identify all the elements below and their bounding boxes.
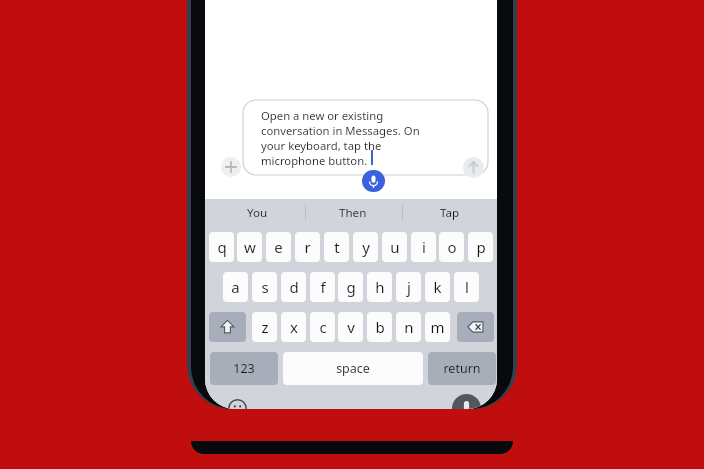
button[interactable]: g: [338, 272, 363, 302]
staticText: Open a new or existing conversation in M…: [261, 108, 420, 168]
button[interactable]: Shift: [209, 312, 246, 342]
button[interactable]: o: [439, 232, 464, 262]
button[interactable]: return: [428, 352, 496, 385]
staticText: y: [362, 237, 370, 257]
staticText: 123: [233, 360, 255, 377]
staticText: w: [244, 237, 256, 257]
button[interactable]: n: [396, 312, 421, 342]
staticText: l: [465, 277, 469, 297]
button[interactable]: m: [425, 312, 450, 342]
staticText: Tap: [440, 205, 460, 221]
staticText: v: [347, 317, 355, 337]
staticText: u: [390, 237, 400, 257]
staticText: q: [217, 237, 227, 257]
button[interactable]: t: [324, 232, 349, 262]
staticText: return: [443, 360, 481, 377]
button[interactable]: You: [213, 200, 301, 225]
button[interactable]: p: [468, 232, 493, 262]
button[interactable]: r: [295, 232, 320, 262]
button[interactable]: [243, 100, 488, 175]
button[interactable]: w: [237, 232, 262, 262]
button[interactable]: q: [209, 232, 234, 262]
staticText: r: [304, 237, 311, 257]
staticText: k: [433, 277, 442, 297]
staticText: f: [320, 277, 326, 297]
staticText: d: [289, 277, 299, 297]
staticText: z: [261, 317, 269, 337]
button[interactable]: Dictation: [452, 394, 481, 409]
button[interactable]: f: [310, 272, 335, 302]
staticText: i: [422, 237, 426, 257]
button[interactable]: e: [266, 232, 291, 262]
staticText: Then: [339, 205, 367, 221]
button[interactable]: Add attachment: [221, 157, 241, 177]
button[interactable]: k: [425, 272, 450, 302]
staticText: o: [447, 237, 457, 257]
button[interactable]: Backspace: [457, 312, 494, 342]
staticText: m: [430, 317, 445, 337]
button[interactable]: u: [382, 232, 407, 262]
button[interactable]: b: [367, 312, 392, 342]
button[interactable]: s: [252, 272, 277, 302]
button[interactable]: j: [396, 272, 421, 302]
button[interactable]: y: [353, 232, 378, 262]
staticText: p: [476, 237, 486, 257]
button[interactable]: l: [454, 272, 479, 302]
staticText: s: [261, 277, 269, 297]
staticText: a: [231, 277, 240, 297]
staticText: j: [407, 277, 411, 297]
button[interactable]: Send: [463, 157, 484, 178]
button[interactable]: d: [281, 272, 306, 302]
staticText: t: [334, 237, 340, 257]
button[interactable]: v: [338, 312, 363, 342]
button[interactable]: h: [367, 272, 392, 302]
button[interactable]: Tap: [406, 200, 494, 225]
button[interactable]: x: [281, 312, 306, 342]
staticText: b: [375, 317, 385, 337]
button[interactable]: i: [411, 232, 436, 262]
staticText: n: [404, 317, 414, 337]
staticText: g: [346, 277, 356, 297]
button[interactable]: Then: [309, 200, 397, 225]
staticText: space: [336, 360, 370, 377]
button[interactable]: Dictate: [362, 170, 385, 192]
staticText: You: [247, 205, 268, 221]
staticText: x: [290, 317, 298, 337]
staticText: c: [319, 317, 327, 337]
button[interactable]: Emoji: [228, 399, 247, 409]
staticText: e: [274, 237, 283, 257]
button[interactable]: z: [252, 312, 277, 342]
staticText: h: [375, 277, 385, 297]
button[interactable]: space: [283, 352, 423, 385]
button[interactable]: c: [310, 312, 335, 342]
button[interactable]: 123: [210, 352, 278, 385]
button[interactable]: a: [223, 272, 248, 302]
